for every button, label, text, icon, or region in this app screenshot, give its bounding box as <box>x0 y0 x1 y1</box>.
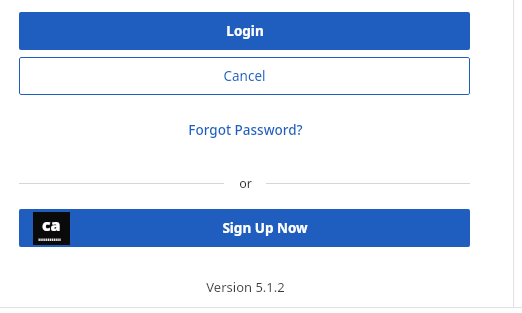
button[interactable]: CA Technologies <box>19 209 470 247</box>
button[interactable]: Login <box>19 12 470 50</box>
staticText: Version 5.1.2 <box>206 278 285 296</box>
other: CA Technologies <box>33 212 70 245</box>
staticText: Sign Up Now <box>222 219 308 237</box>
staticText: Cancel <box>223 67 266 85</box>
button[interactable]: Forgot Password? <box>150 118 340 142</box>
staticText: Login <box>226 22 264 40</box>
staticText: ca <box>42 214 61 236</box>
staticText: Forgot Password? <box>188 121 303 139</box>
staticText: or <box>239 175 252 192</box>
button[interactable]: Cancel <box>19 57 470 95</box>
